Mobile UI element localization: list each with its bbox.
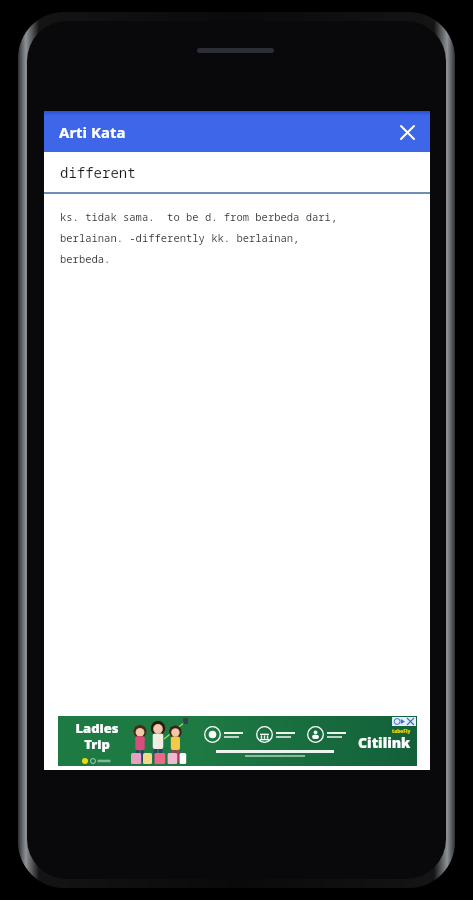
staticText: ks. tidak sama. to be d. from berbeda da…: [60, 210, 338, 267]
staticText: different: [60, 163, 136, 182]
staticText: Citilink: [358, 733, 411, 752]
button[interactable]: Close ad: [407, 718, 414, 725]
staticText: Arti Kata: [59, 122, 126, 142]
staticText: Trip: [84, 735, 110, 753]
staticText: tabeFly: [392, 728, 411, 735]
button[interactable]: Close: [390, 115, 424, 149]
button[interactable]: Advertisement Citilink Ladies Trip: [58, 716, 417, 766]
staticText: Ladies: [75, 719, 119, 737]
